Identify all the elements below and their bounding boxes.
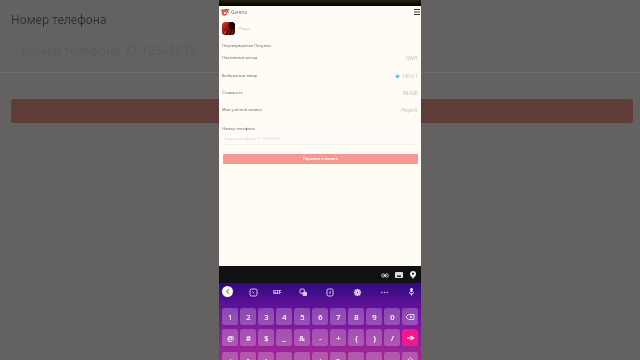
- button[interactable]: ": [240, 352, 256, 360]
- button[interactable]: Backspace: [402, 308, 418, 325]
- staticText: Номер телефона: [11, 11, 107, 27]
- button[interactable]: Enter: [402, 329, 418, 346]
- staticText: *: [228, 356, 233, 360]
- button[interactable]: Settings: [351, 286, 363, 298]
- button[interactable]: !: [312, 352, 328, 360]
- staticText: 7: [336, 312, 341, 322]
- button[interactable]: 2: [240, 308, 256, 325]
- button[interactable]: Платежный метод: [219, 52, 421, 64]
- staticText: Выбранный товар: [222, 73, 258, 78]
- button[interactable]: Player: [222, 22, 342, 35]
- staticText: Player: [239, 26, 251, 31]
- staticText: Перейти к оплате: [303, 156, 338, 162]
- button[interactable]: Voice input: [405, 286, 417, 298]
- button[interactable]: -: [312, 329, 328, 346]
- staticText: ?: [336, 356, 340, 360]
- button[interactable]: Стоимость: [219, 87, 421, 99]
- button[interactable]: ;: [294, 352, 310, 360]
- staticText: Garena: [231, 9, 247, 15]
- staticText: ": [246, 356, 250, 360]
- staticText: /: [391, 333, 394, 343]
- staticText: $: [264, 333, 269, 343]
- staticText: !: [319, 356, 322, 360]
- button[interactable]: :: [276, 352, 292, 360]
- button[interactable]: Location: [407, 269, 419, 281]
- button[interactable]: Garena: [221, 7, 419, 17]
- button[interactable]: More options: [378, 286, 390, 298]
- staticText: PlayerX: [401, 107, 418, 113]
- button[interactable]: (: [348, 329, 364, 346]
- button[interactable]: Keyboard: [393, 269, 405, 281]
- staticText: #: [246, 333, 251, 343]
- staticText: 3: [264, 312, 269, 322]
- button[interactable]: ?: [330, 352, 346, 360]
- button[interactable]: Recents: [379, 269, 391, 281]
- staticText: +: [336, 333, 341, 343]
- button[interactable]: Перейти к оплате: [223, 154, 418, 164]
- button[interactable]: 3: [258, 308, 274, 325]
- staticText: ': [265, 356, 267, 360]
- staticText: GIF: [273, 289, 282, 296]
- button[interactable]: GIF: [273, 286, 282, 298]
- button[interactable]: =: [384, 352, 400, 360]
- staticText: 9: [372, 312, 377, 322]
- staticText: Платежный метод: [222, 55, 258, 60]
- staticText: Номер телефона: [222, 126, 255, 131]
- button[interactable]: Back: [222, 286, 233, 297]
- staticText: 4: [282, 312, 287, 322]
- staticText: Имя учетной записи: [222, 107, 262, 112]
- button[interactable]: Clipboard: [324, 286, 336, 298]
- button[interactable]: 7: [330, 308, 346, 325]
- staticText: 5: [300, 312, 305, 322]
- staticText: 6: [318, 312, 323, 322]
- button[interactable]: Имя учетной записи: [219, 104, 421, 116]
- button[interactable]: 9: [366, 308, 382, 325]
- staticText: Подтверждение Покупки: [222, 43, 271, 48]
- button[interactable]: 1: [222, 308, 238, 325]
- staticText: 1: [228, 312, 233, 322]
- button[interactable]: 6: [312, 308, 328, 325]
- staticText: 100 x 1: [402, 73, 418, 79]
- button[interactable]: 4: [276, 308, 292, 325]
- staticText: &: [299, 333, 305, 343]
- staticText: Стоимость: [222, 90, 243, 95]
- button[interactable]: &: [294, 329, 310, 346]
- button[interactable]: Translate: [297, 286, 309, 298]
- staticText: -: [319, 333, 322, 343]
- staticText: 0: [390, 312, 395, 322]
- button[interactable]: Stickers: [247, 286, 259, 298]
- button[interactable]: Выбранный товар: [219, 70, 421, 82]
- button[interactable]: 8: [348, 308, 364, 325]
- staticText: (: [355, 333, 358, 343]
- button[interactable]: 5: [294, 308, 310, 325]
- staticText: _: [282, 333, 286, 343]
- staticText: 86.42₽: [403, 90, 418, 96]
- staticText: ): [373, 333, 376, 343]
- button[interactable]: @: [222, 329, 238, 346]
- button[interactable]: /: [384, 329, 400, 346]
- staticText: QIWI: [406, 55, 418, 61]
- button[interactable]: _: [276, 329, 292, 346]
- staticText: 2: [246, 312, 251, 322]
- button[interactable]: ,: [348, 352, 364, 360]
- button[interactable]: #: [240, 329, 256, 346]
- button[interactable]: Номер телефона 77 12345678: [222, 133, 418, 145]
- staticText: 8: [354, 312, 359, 322]
- button[interactable]: $: [258, 329, 274, 346]
- staticText: Номер телефона 77 12345678: [224, 136, 281, 141]
- button[interactable]: +: [330, 329, 346, 346]
- button[interactable]: ': [258, 352, 274, 360]
- button[interactable]: Shift: [402, 352, 418, 360]
- staticText: @: [227, 333, 234, 343]
- button[interactable]: *: [222, 352, 238, 360]
- button[interactable]: 0: [384, 308, 400, 325]
- button[interactable]: ): [366, 329, 382, 346]
- button[interactable]: Menu: [412, 6, 422, 16]
- button[interactable]: .: [366, 352, 382, 360]
